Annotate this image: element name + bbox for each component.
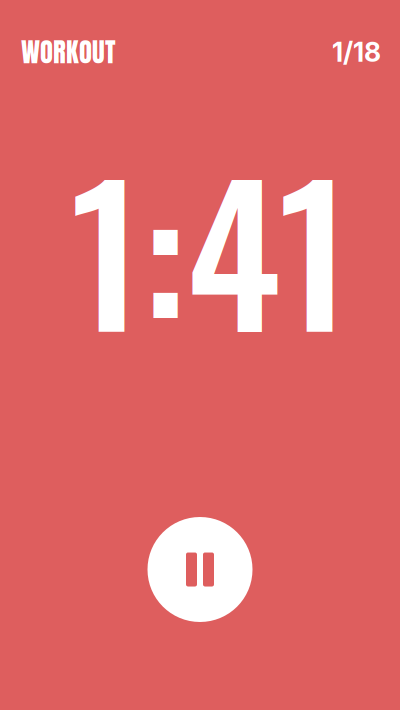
- staticText: WORKOUT: [21, 32, 116, 72]
- staticText: 1:41: [70, 109, 349, 386]
- button[interactable]: Pause: [147, 517, 252, 622]
- staticText: 1/18: [332, 36, 381, 68]
